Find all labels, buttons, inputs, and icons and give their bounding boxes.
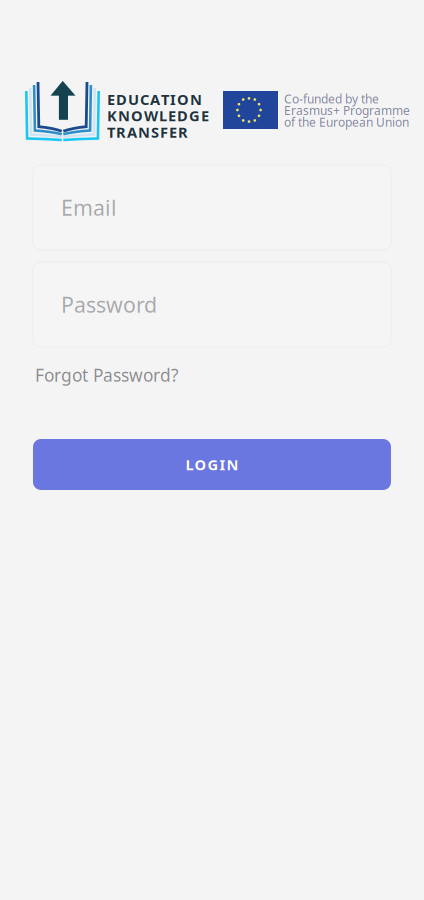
staticText: K N O W L E D G E (107, 106, 209, 125)
staticText: Forgot Password? (35, 363, 179, 386)
button[interactable]: L O G I N (33, 439, 391, 490)
staticText: L O G I N (185, 455, 238, 474)
staticText: Password (61, 290, 157, 319)
staticText: E D U C A T I O N (107, 89, 202, 109)
button[interactable]: Forgot Password? (35, 363, 185, 387)
button[interactable]: Password (33, 262, 391, 347)
staticText: Email (61, 193, 117, 222)
staticText: Erasmus+ Programme (284, 102, 410, 118)
staticText: Co-funded by the (284, 91, 379, 107)
staticText: of the European Union (284, 114, 409, 130)
button[interactable]: Email (33, 165, 391, 250)
staticText: T R A N S F E R (107, 122, 188, 142)
